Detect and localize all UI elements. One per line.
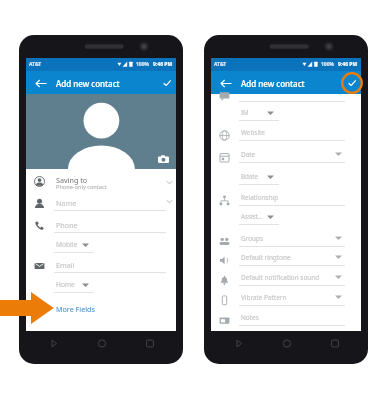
button[interactable]: Bdate bbox=[211, 170, 361, 187]
staticText: 100% bbox=[136, 61, 150, 68]
staticText: Assist... bbox=[241, 212, 263, 220]
button[interactable]: Add photo bbox=[156, 152, 170, 166]
button[interactable]: Vibrate Pattern bbox=[211, 289, 361, 308]
button[interactable]: More Fields bbox=[26, 301, 176, 319]
button[interactable]: Back bbox=[32, 74, 50, 92]
staticText: Add new contact bbox=[56, 78, 120, 89]
staticText: Phone bbox=[56, 220, 78, 230]
button[interactable]: Assist... bbox=[211, 210, 361, 227]
staticText: More Fields bbox=[56, 304, 95, 314]
staticText: 9:46 PM bbox=[153, 61, 173, 68]
staticText: Home bbox=[56, 280, 75, 289]
button[interactable]: Save contact bbox=[341, 72, 363, 94]
button[interactable]: Mobile bbox=[26, 238, 176, 256]
staticText: Add new contact bbox=[241, 78, 305, 89]
button[interactable]: Phone bbox=[26, 216, 176, 237]
button[interactable]: Email bbox=[26, 256, 176, 277]
button[interactable]: Back bbox=[217, 74, 235, 92]
button[interactable]: Relationship bbox=[211, 189, 361, 208]
staticText: Saving to bbox=[56, 175, 88, 185]
staticText: 100% bbox=[321, 61, 335, 68]
staticText: Default ringtone bbox=[241, 253, 291, 262]
button[interactable]: Default notification sound bbox=[211, 269, 361, 288]
button[interactable]: Saving to bbox=[26, 170, 176, 196]
staticText: Relationship bbox=[241, 193, 279, 202]
staticText: Date bbox=[241, 150, 256, 159]
staticText: Email bbox=[56, 260, 75, 270]
button[interactable]: Date bbox=[211, 146, 361, 165]
staticText: Vibrate Pattern bbox=[241, 293, 287, 302]
button[interactable]: Website bbox=[211, 124, 361, 143]
staticText: Notes bbox=[241, 313, 259, 322]
staticText: Bdate bbox=[241, 172, 259, 180]
staticText: AT&T bbox=[214, 61, 227, 68]
button[interactable]: Name bbox=[26, 194, 176, 215]
staticText: Website bbox=[241, 128, 265, 137]
button[interactable]: Save contact bbox=[156, 72, 178, 94]
staticText: Groups bbox=[241, 234, 263, 243]
staticText: Mobile bbox=[56, 240, 78, 249]
staticText: Name bbox=[56, 198, 77, 208]
button[interactable]: Notes bbox=[211, 309, 361, 328]
staticText: Phone-only contact bbox=[56, 183, 107, 191]
staticText: AT&T bbox=[29, 61, 42, 68]
staticText: IM bbox=[241, 108, 249, 116]
button[interactable]: IM bbox=[211, 106, 361, 123]
staticText: 9:46 PM bbox=[338, 61, 358, 68]
button[interactable]: Groups bbox=[211, 230, 361, 249]
staticText: Default notification sound bbox=[241, 273, 320, 282]
button[interactable]: Home bbox=[26, 278, 176, 296]
button[interactable]: Default ringtone bbox=[211, 249, 361, 268]
button[interactable] bbox=[211, 85, 361, 104]
